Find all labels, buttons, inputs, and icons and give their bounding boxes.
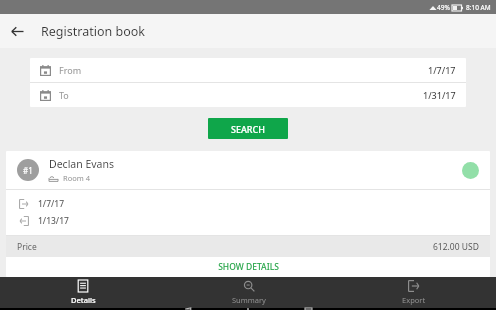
staticText: Export	[402, 295, 426, 305]
button[interactable]: Recents	[278, 308, 338, 310]
staticText: Room 4	[63, 173, 90, 183]
staticText: Price	[17, 241, 37, 253]
staticText: SEARCH	[231, 123, 265, 135]
staticText: Registration book	[41, 23, 145, 40]
staticText: 1/7/17	[38, 198, 64, 210]
button[interactable]: Details	[0, 277, 166, 308]
staticText: From	[59, 64, 82, 76]
staticText: Declan Evans	[49, 157, 115, 171]
button[interactable]: SEARCH	[208, 118, 288, 139]
staticText: 612.00 USD	[433, 241, 479, 253]
button[interactable]: Export	[331, 277, 496, 308]
staticText: To	[59, 89, 69, 101]
staticText: 1/7/17	[428, 64, 456, 76]
staticText: 49%	[437, 3, 450, 12]
button[interactable]: SHOW DETAILS	[6, 257, 490, 277]
button[interactable]: #1	[6, 151, 490, 189]
staticText: #1	[23, 165, 33, 176]
button[interactable]: From	[30, 58, 466, 82]
staticText: Summary	[232, 295, 266, 305]
staticText: SHOW DETAILS	[218, 261, 279, 273]
staticText: 1/31/17	[423, 89, 456, 101]
button[interactable]: Back	[158, 308, 218, 310]
button[interactable]: Home	[218, 308, 278, 310]
staticText: Details	[71, 295, 96, 305]
button[interactable]: Back	[0, 14, 34, 48]
button[interactable]: Summary	[166, 277, 331, 308]
staticText: 1/13/17	[38, 215, 69, 227]
staticText: 8:10 AM	[466, 3, 491, 12]
button[interactable]: To	[30, 83, 466, 107]
